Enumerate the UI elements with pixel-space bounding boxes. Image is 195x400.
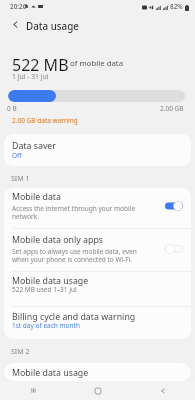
- staticText: SIM 2: [11, 348, 30, 356]
- button[interactable]: [4, 272, 191, 307]
- button[interactable]: Back: [153, 381, 173, 400]
- staticText: SIM 1: [11, 175, 30, 183]
- staticText: Data usage: [26, 22, 79, 32]
- staticText: Mobile data: [12, 192, 61, 202]
- staticText: 2.00 GB: [160, 106, 184, 113]
- staticText: Access the internet through your mobile …: [12, 204, 152, 220]
- staticText: 522 MB: [12, 58, 69, 75]
- button[interactable]: [4, 229, 191, 272]
- staticText: Mobile data usage: [12, 276, 89, 286]
- button[interactable]: [4, 363, 191, 381]
- button[interactable]: Recent apps: [23, 381, 43, 400]
- button[interactable]: [4, 134, 191, 166]
- staticText: Set apps to always use mobile data, even…: [12, 247, 162, 263]
- button[interactable]: Off: [165, 244, 183, 254]
- staticText: 1st day of each month: [12, 323, 80, 330]
- staticText: 1 Jul - 31 Jul: [12, 74, 49, 81]
- staticText: Mobile data only apps: [12, 235, 104, 245]
- staticText: Off: [12, 153, 22, 160]
- staticText: 82%: [170, 4, 183, 11]
- button[interactable]: On: [165, 201, 183, 211]
- button[interactable]: [4, 306, 191, 339]
- button[interactable]: Navigate up: [6, 15, 24, 33]
- staticText: of mobile data: [70, 60, 124, 68]
- staticText: Data saver: [12, 141, 56, 151]
- staticText: 20:26: [10, 4, 27, 11]
- staticText: Mobile data usage: [12, 368, 89, 378]
- button[interactable]: Home: [88, 381, 108, 400]
- button[interactable]: [4, 188, 191, 228]
- staticText: 2.00 GB data warning: [12, 118, 78, 125]
- staticText: 522 MB used 1–31 Jul: [12, 287, 77, 294]
- staticText: 0 B: [7, 106, 17, 113]
- staticText: Billing cycle and data warning: [12, 312, 136, 322]
